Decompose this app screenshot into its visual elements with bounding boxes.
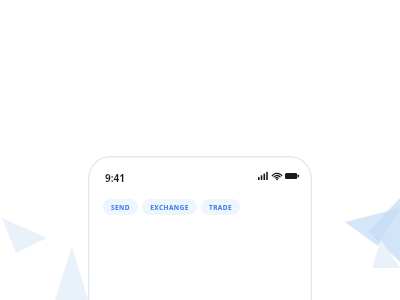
staticText: TRADE xyxy=(209,203,232,212)
button[interactable]: TRADE xyxy=(201,199,240,215)
staticText: 9:41 xyxy=(105,171,125,185)
staticText: EXCHANGE xyxy=(150,203,189,212)
button[interactable]: EXCHANGE xyxy=(142,199,197,215)
staticText: SEND xyxy=(111,203,130,212)
button[interactable]: SEND xyxy=(103,199,138,215)
